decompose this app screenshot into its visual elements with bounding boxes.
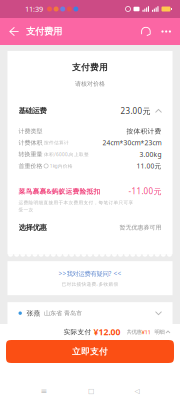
staticText: 山东省 青岛市	[44, 309, 82, 317]
staticText: 实际支付	[63, 328, 91, 336]
staticText: -11.00元	[128, 186, 161, 197]
staticText: 计费体积	[18, 139, 42, 147]
staticText: ≡	[40, 386, 47, 396]
staticText: 按件估算计	[44, 140, 69, 146]
staticText: 3.00kg	[139, 150, 161, 159]
staticText: 菜鸟裹裹&蚂蚁运费险抵扣	[18, 187, 100, 196]
staticText: 暂无优惠券可用	[119, 224, 161, 231]
staticText: 体积/6000,向上取整	[44, 151, 89, 158]
staticText: □	[88, 387, 94, 395]
staticText: 转换重量	[18, 151, 42, 158]
staticText: >>我对运费有疑问? <<	[58, 269, 121, 278]
button[interactable]: 张燕	[7, 302, 172, 324]
button[interactable]: Back	[0, 18, 26, 45]
button[interactable]: >>我对运费有疑问? <<	[58, 269, 121, 278]
staticText: 11:39	[25, 4, 43, 14]
staticText: ◁	[134, 387, 139, 395]
staticText: 支付费用	[72, 62, 108, 73]
staticText: 立即支付	[72, 346, 108, 357]
staticText: 首重价格	[18, 162, 42, 170]
staticText: 已对比揽快递费, 多收赔偿	[61, 281, 118, 287]
staticText: 张燕	[26, 309, 40, 317]
staticText: ¥11	[141, 328, 150, 336]
staticText: 共优惠	[126, 329, 141, 335]
staticText: 请核对价格	[75, 80, 105, 87]
button[interactable]: 明细	[150, 329, 170, 335]
button[interactable]: Customer service	[134, 18, 157, 45]
button[interactable]: 选择优惠	[18, 213, 161, 254]
staticText: 支付费用	[26, 26, 62, 37]
staticText: 选择优惠	[18, 223, 46, 232]
staticText: ¥12.00	[93, 326, 120, 338]
staticText: 运费险明细直接用于本次费用支付，每笔订单只可享	[18, 200, 133, 206]
staticText: 1kg内价格	[50, 163, 73, 169]
staticText: 受一次	[18, 207, 33, 213]
staticText: 明细	[154, 329, 164, 335]
staticText: 24cm*30cm*23cm	[102, 138, 161, 147]
staticText: 11.00元	[136, 161, 161, 170]
staticText: 计费类型	[18, 127, 42, 135]
staticText: 基础运费	[18, 106, 46, 115]
staticText: 23.00元	[120, 105, 150, 116]
button[interactable]: 立即支付	[0, 340, 180, 363]
staticText: 按体积计费	[126, 127, 161, 135]
button[interactable]: More	[157, 18, 180, 45]
